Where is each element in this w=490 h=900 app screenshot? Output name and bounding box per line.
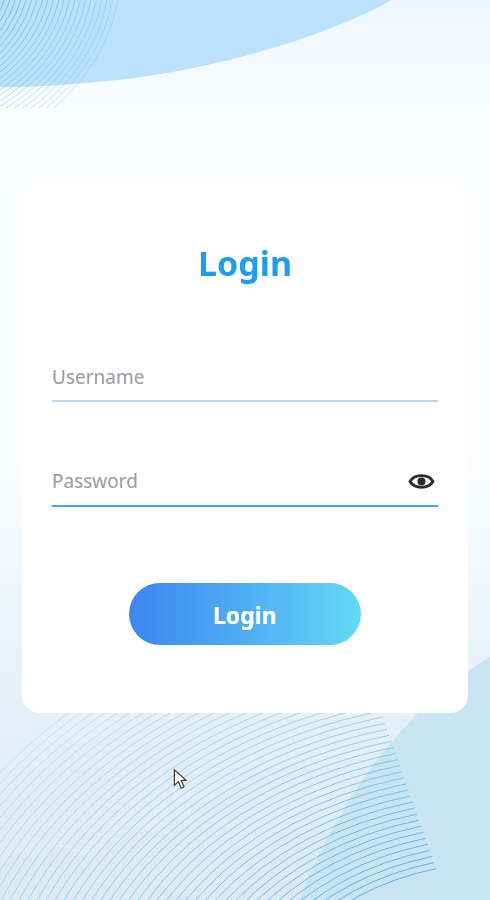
staticText: Login — [213, 599, 277, 630]
staticText: Username — [52, 364, 145, 390]
button[interactable]: Login — [129, 583, 361, 645]
staticText: Password — [52, 468, 138, 494]
button[interactable]: Username — [52, 364, 438, 402]
button[interactable]: Show password — [404, 464, 438, 498]
staticText: Login — [22, 240, 468, 286]
button[interactable]: Password — [52, 468, 404, 494]
